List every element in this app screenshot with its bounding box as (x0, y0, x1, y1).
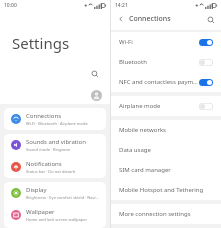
button[interactable]: Toggle off (199, 103, 213, 110)
button[interactable]: Search connections (205, 14, 216, 25)
staticText: Settings (12, 33, 70, 53)
button[interactable]: Toggle off (199, 59, 213, 66)
staticText: Wi-Fi (119, 38, 199, 46)
staticText: Wallpaper (26, 208, 55, 216)
staticText: NFC and contactless payments (119, 78, 199, 86)
staticText: Status bar · Do not disturb (26, 169, 76, 174)
button[interactable]: Mobile Hotspot and Tethering (111, 180, 221, 200)
button[interactable]: Samsung account profile (91, 90, 102, 101)
staticText: Airplane mode (119, 102, 199, 110)
button[interactable]: Search settings (88, 67, 102, 81)
staticText: Sound mode · Ringtone (26, 147, 71, 152)
button[interactable]: Wallpaper (4, 204, 106, 226)
button[interactable]: Sounds and vibration (4, 134, 106, 156)
staticText: Connections (26, 112, 62, 120)
staticText: Bluetooth (119, 58, 199, 66)
staticText: 14:21 (115, 2, 128, 9)
button[interactable]: More connection settings (111, 204, 221, 224)
staticText: SIM card manager (119, 166, 171, 174)
button[interactable]: Navigate up (116, 14, 126, 24)
staticText: Display (26, 186, 47, 194)
button[interactable]: Toggle on (199, 79, 213, 86)
staticText: Sounds and vibration (26, 138, 86, 146)
button[interactable]: Mobile networks (111, 120, 221, 140)
button[interactable]: Wi-Fi (111, 32, 221, 52)
button[interactable]: Toggle on (199, 39, 213, 46)
staticText: Brightness · Eye comfort shield · Naviga… (26, 195, 99, 200)
staticText: Home and lock screen wallpaper (26, 217, 88, 222)
staticText: Wi-Fi · Bluetooth · Airplane mode (26, 121, 88, 126)
button[interactable]: NFC and contactless payments (111, 72, 221, 92)
staticText: 10:00 (4, 2, 17, 9)
button[interactable]: Notifications (4, 156, 106, 178)
button[interactable]: SIM card manager (111, 160, 221, 180)
staticText: Notifications (26, 160, 62, 168)
staticText: Mobile Hotspot and Tethering (119, 186, 204, 194)
button[interactable]: Connections (4, 108, 106, 130)
button[interactable]: Data usage (111, 140, 221, 160)
staticText: More connection settings (119, 210, 191, 218)
button[interactable]: Bluetooth (111, 52, 221, 72)
button[interactable]: Display (4, 182, 106, 204)
staticText: Data usage (119, 146, 151, 154)
staticText: Mobile networks (119, 126, 166, 134)
staticText: Connections (129, 14, 205, 24)
button[interactable]: Airplane mode (111, 96, 221, 116)
